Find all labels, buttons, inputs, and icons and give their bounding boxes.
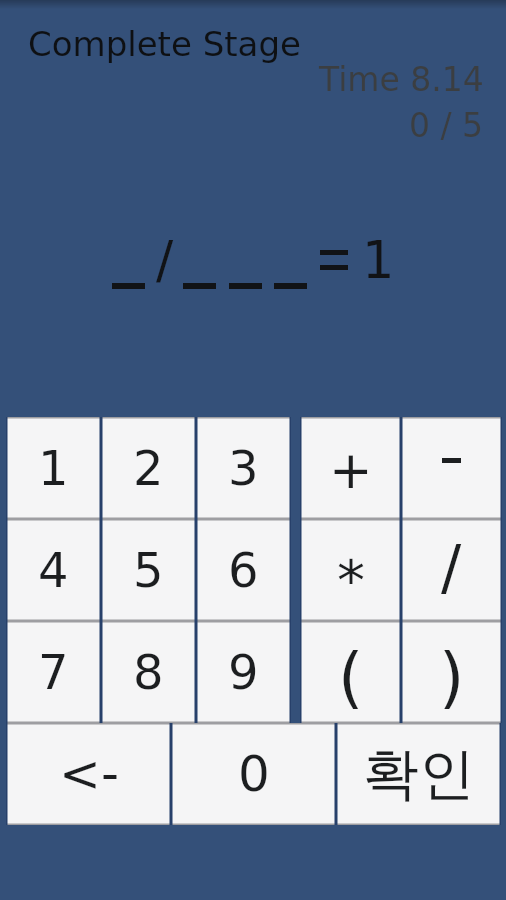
button[interactable]: 6 xyxy=(196,519,291,621)
button[interactable]: 1 xyxy=(6,417,101,519)
button[interactable]: * xyxy=(300,519,401,621)
staticText: 0 / 5 xyxy=(409,106,484,144)
staticText: <- xyxy=(59,745,119,803)
staticText: 8 xyxy=(133,644,164,700)
staticText: 7 xyxy=(38,644,69,700)
button[interactable]: ( xyxy=(300,621,401,723)
staticText: ( xyxy=(338,640,364,716)
button[interactable]: 0 xyxy=(171,723,336,825)
button[interactable]: 7 xyxy=(6,621,101,723)
button[interactable]: <- xyxy=(6,723,171,825)
staticText: ) xyxy=(439,640,465,716)
button[interactable] xyxy=(401,417,502,519)
staticText: 2 xyxy=(133,440,164,496)
staticText: Complete Stage xyxy=(28,24,301,64)
staticText: 6 xyxy=(228,542,259,598)
button[interactable]: / xyxy=(401,519,502,621)
button[interactable]: 확인 xyxy=(336,723,501,825)
button[interactable]: ) xyxy=(401,621,502,723)
button[interactable]: 5 xyxy=(101,519,196,621)
button[interactable]: + xyxy=(300,417,401,519)
button[interactable]: 3 xyxy=(196,417,291,519)
button[interactable]: 8 xyxy=(101,621,196,723)
staticText: 1 xyxy=(362,231,395,290)
button[interactable]: 9 xyxy=(196,621,291,723)
button[interactable]: 4 xyxy=(6,519,101,621)
staticText: / xyxy=(441,532,462,602)
staticText: 확인 xyxy=(363,739,475,810)
staticText: 4 xyxy=(38,542,69,598)
staticText: 0 xyxy=(238,745,270,803)
staticText: Time 8.14 xyxy=(319,60,484,98)
staticText: + xyxy=(329,440,373,501)
button[interactable]: 2 xyxy=(101,417,196,519)
staticText: / xyxy=(156,231,174,290)
staticText: 5 xyxy=(133,542,164,598)
staticText: 3 xyxy=(228,440,259,496)
staticText: * xyxy=(337,548,365,613)
staticText: 9 xyxy=(228,644,259,700)
staticText: 1 xyxy=(38,440,69,496)
